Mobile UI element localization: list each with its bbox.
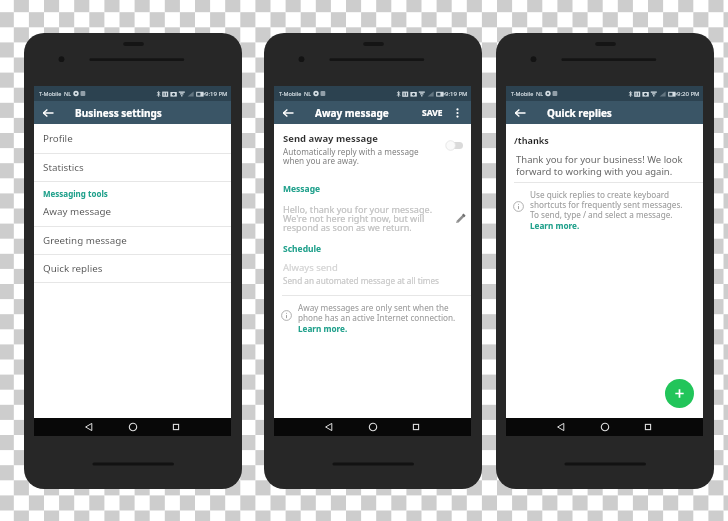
staticText: /thanks [514,134,549,146]
button[interactable]: Always send [274,261,471,286]
button[interactable]: Recent apps [164,418,188,436]
button[interactable]: Home [593,418,617,436]
button[interactable]: Quick replies [34,255,231,282]
staticText: Quick replies [547,106,612,120]
staticText: Message [283,183,321,195]
staticText: Quick replies [43,262,103,275]
button[interactable]: Send away message toggle [445,132,464,156]
button[interactable]: Home [121,418,145,436]
staticText: Send an automated message at all times [283,275,440,286]
button[interactable]: Back [34,101,62,124]
button[interactable]: Home [361,418,385,436]
staticText: T-Mobile NL [39,90,72,97]
button[interactable]: Statistics [34,154,231,181]
staticText: Profile [43,132,73,145]
staticText: Schedule [283,243,322,255]
staticText: Automatically reply with a message when … [283,146,419,167]
button[interactable]: Learn more. [298,323,348,334]
button[interactable]: Back [274,101,302,124]
button[interactable]: Add quick reply [665,379,694,408]
staticText: 9:19 PM [205,90,228,98]
staticText: Away message [315,106,389,120]
staticText: Use quick replies to create keyboard sho… [530,189,683,220]
button[interactable]: Back [317,418,341,436]
button[interactable]: Learn more. [530,220,580,231]
button[interactable]: Recent apps [636,418,660,436]
staticText: Messaging tools [43,188,108,199]
staticText: T-Mobile NL [511,90,544,97]
button[interactable]: Greeting message [34,227,231,254]
staticText: 9:19 PM [445,90,468,98]
button[interactable]: SAVE [416,101,444,124]
staticText: Always send [283,261,338,274]
staticText: Business settings [75,106,162,120]
button[interactable]: More options [444,101,471,124]
staticText: 9:20 PM [677,90,700,98]
button[interactable]: Hello, thank you for your message. We're… [274,203,471,234]
button[interactable]: Messaging tools [34,182,231,226]
button[interactable]: Back [506,101,534,124]
other: Edit message [455,213,466,224]
button[interactable]: Back [77,418,101,436]
staticText: Send away message [283,132,378,145]
staticText: T-Mobile NL [279,90,312,97]
staticText: SAVE [422,107,443,119]
button[interactable]: Profile [34,124,231,153]
staticText: Greeting message [43,234,127,247]
button[interactable]: Back [549,418,573,436]
staticText: Thank you for your business! We look for… [516,153,683,177]
staticText: Statistics [43,161,84,174]
staticText: Hello, thank you for your message. We're… [283,203,455,234]
button[interactable]: Send away message [274,124,471,175]
button[interactable]: Recent apps [404,418,428,436]
staticText: Away messages are only sent when the pho… [298,302,456,323]
staticText: Away message [43,205,112,218]
